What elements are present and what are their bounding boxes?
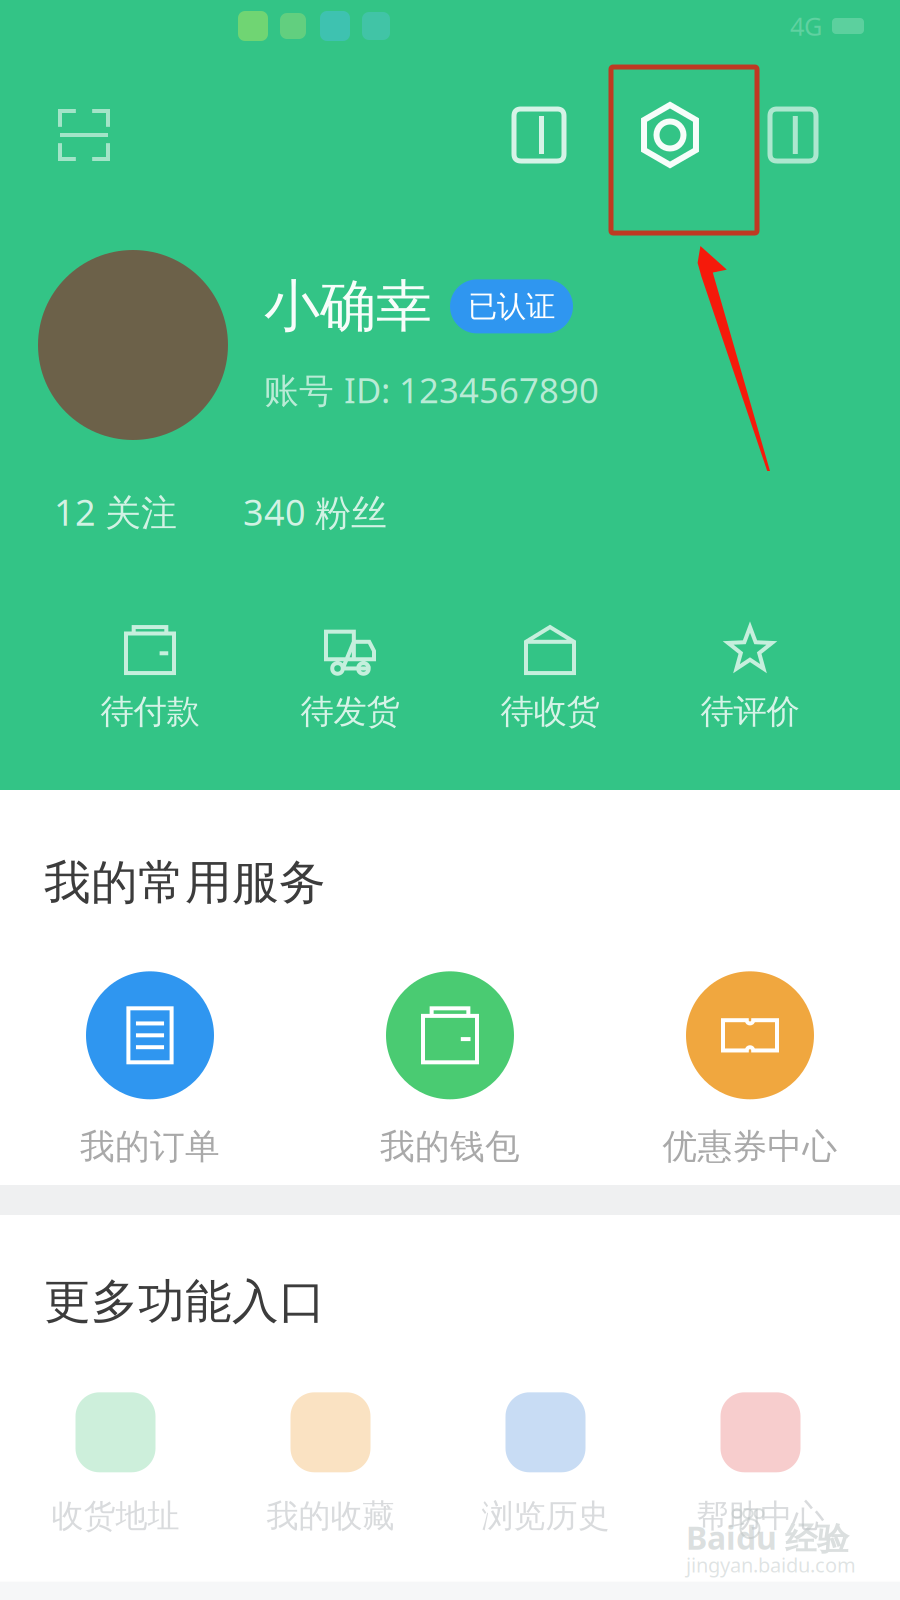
staticText: Baidu 经验: [686, 1516, 849, 1559]
staticText: 12 关注: [54, 488, 177, 536]
staticText: jingyan.baidu.com: [686, 1551, 856, 1578]
staticText: 我的钱包: [380, 1125, 520, 1168]
staticText: 更多功能入口: [44, 1273, 326, 1330]
staticText: 我的订单: [80, 1125, 220, 1168]
button[interactable]: 340 粉丝: [243, 488, 387, 536]
button[interactable]: 12 关注: [54, 488, 177, 536]
staticText: 待发货: [300, 691, 399, 732]
staticText: 4G: [790, 9, 822, 43]
staticText: 待付款: [100, 691, 199, 732]
staticText: 账号 ID: 1234567890: [264, 367, 599, 413]
staticText: 我的收藏: [266, 1496, 394, 1536]
staticText: 帮助中心: [696, 1496, 824, 1536]
button[interactable]: Customer service: [756, 95, 830, 175]
button[interactable]: 我的钱包: [300, 971, 600, 1168]
button[interactable]: 我的收藏: [223, 1392, 438, 1536]
button[interactable]: 待评价: [650, 627, 850, 732]
staticText: 收货地址: [51, 1496, 179, 1536]
button[interactable]: 帮助中心: [653, 1392, 868, 1536]
staticText: 340 粉丝: [243, 488, 387, 536]
button[interactable]: 浏览历史: [438, 1392, 653, 1536]
button[interactable]: Scan QR code: [46, 97, 122, 173]
staticText: 待评价: [700, 691, 799, 732]
button[interactable]: 待发货: [250, 627, 450, 732]
staticText: 我的常用服务: [44, 854, 326, 911]
button[interactable]: Messages: [500, 95, 578, 175]
button[interactable]: 待付款: [50, 627, 250, 732]
button[interactable]: 优惠券中心: [600, 971, 900, 1168]
staticText: 小确幸: [264, 272, 432, 341]
staticText: 浏览历史: [481, 1496, 609, 1536]
staticText: 待收货: [500, 691, 599, 732]
staticText: 已认证: [468, 288, 555, 324]
staticText: 优惠券中心: [662, 1125, 837, 1168]
button[interactable]: 待收货: [450, 627, 650, 732]
button[interactable]: Settings: [630, 95, 710, 175]
button[interactable]: 收货地址: [8, 1392, 223, 1536]
button[interactable]: 我的订单: [0, 971, 300, 1168]
